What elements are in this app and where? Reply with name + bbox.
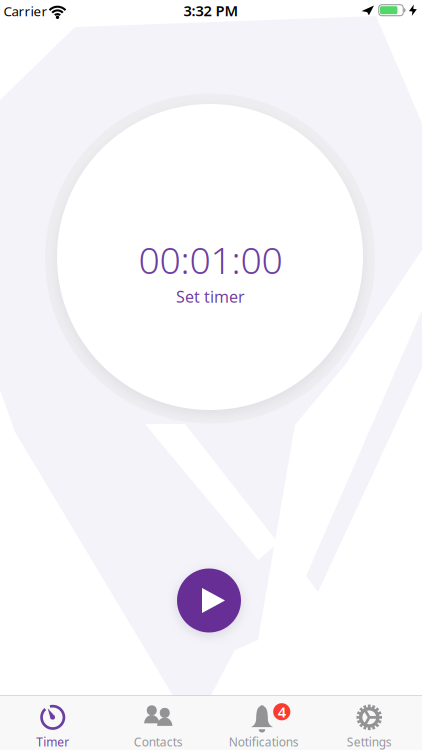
button[interactable]: Settings: [316, 695, 422, 750]
staticText: 3:32 PM: [183, 1, 238, 20]
button[interactable]: Start timer: [177, 568, 241, 632]
staticText: Set timer: [176, 286, 245, 307]
staticText: Notifications: [229, 734, 299, 750]
button[interactable]: 00:01:00: [105, 230, 315, 320]
button[interactable]: Timer: [0, 695, 105, 750]
button[interactable]: Notifications: [211, 695, 316, 750]
staticText: Carrier: [3, 2, 47, 20]
staticText: Settings: [347, 734, 392, 750]
button[interactable]: Contacts: [105, 695, 211, 750]
staticText: Contacts: [134, 734, 183, 750]
staticText: Timer: [36, 734, 69, 750]
staticText: 00:01:00: [138, 235, 282, 284]
staticText: 4: [278, 702, 286, 721]
